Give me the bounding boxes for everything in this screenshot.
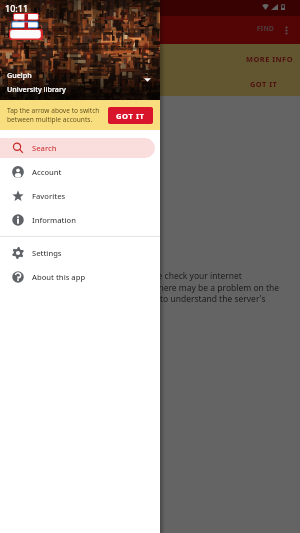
staticText: GOT IT xyxy=(116,111,145,121)
staticText: MORE INFO xyxy=(246,54,294,64)
button[interactable]: FIND xyxy=(249,19,283,42)
staticText: GOT IT xyxy=(250,79,278,89)
button[interactable]: More options xyxy=(273,17,299,43)
button[interactable]: Switch account xyxy=(140,72,154,86)
staticText: 10:11 xyxy=(5,2,29,14)
staticText: Guelph xyxy=(7,70,32,80)
button[interactable]: Account xyxy=(0,162,155,182)
button[interactable]: Open navigation drawer xyxy=(0,16,28,44)
staticText: Search xyxy=(32,143,57,153)
staticText: Information xyxy=(32,215,76,225)
button[interactable]: Information xyxy=(0,210,155,230)
staticText: About this app xyxy=(32,272,86,282)
button[interactable]: GOT IT xyxy=(108,107,153,124)
button[interactable]: GOT IT xyxy=(242,76,286,92)
button[interactable]: Settings xyxy=(0,243,155,263)
staticText: FIND xyxy=(257,24,275,33)
button[interactable]: MORE INFO xyxy=(238,51,300,67)
staticText: University library xyxy=(7,84,66,94)
button[interactable]: Search xyxy=(0,138,155,158)
staticText: Tap the arrow above to switch between mu… xyxy=(7,106,100,124)
staticText: Sorry, something went wrong. Please chec… xyxy=(14,270,286,316)
staticText: Settings xyxy=(32,248,62,258)
button[interactable]: Favorites xyxy=(0,186,155,206)
staticText: Notice: as of June you will no longer re… xyxy=(10,59,161,79)
staticText: 10:11 xyxy=(5,4,25,14)
button[interactable]: About this app xyxy=(0,267,155,287)
staticText: Account xyxy=(32,167,62,177)
staticText: Favorites xyxy=(32,191,66,201)
